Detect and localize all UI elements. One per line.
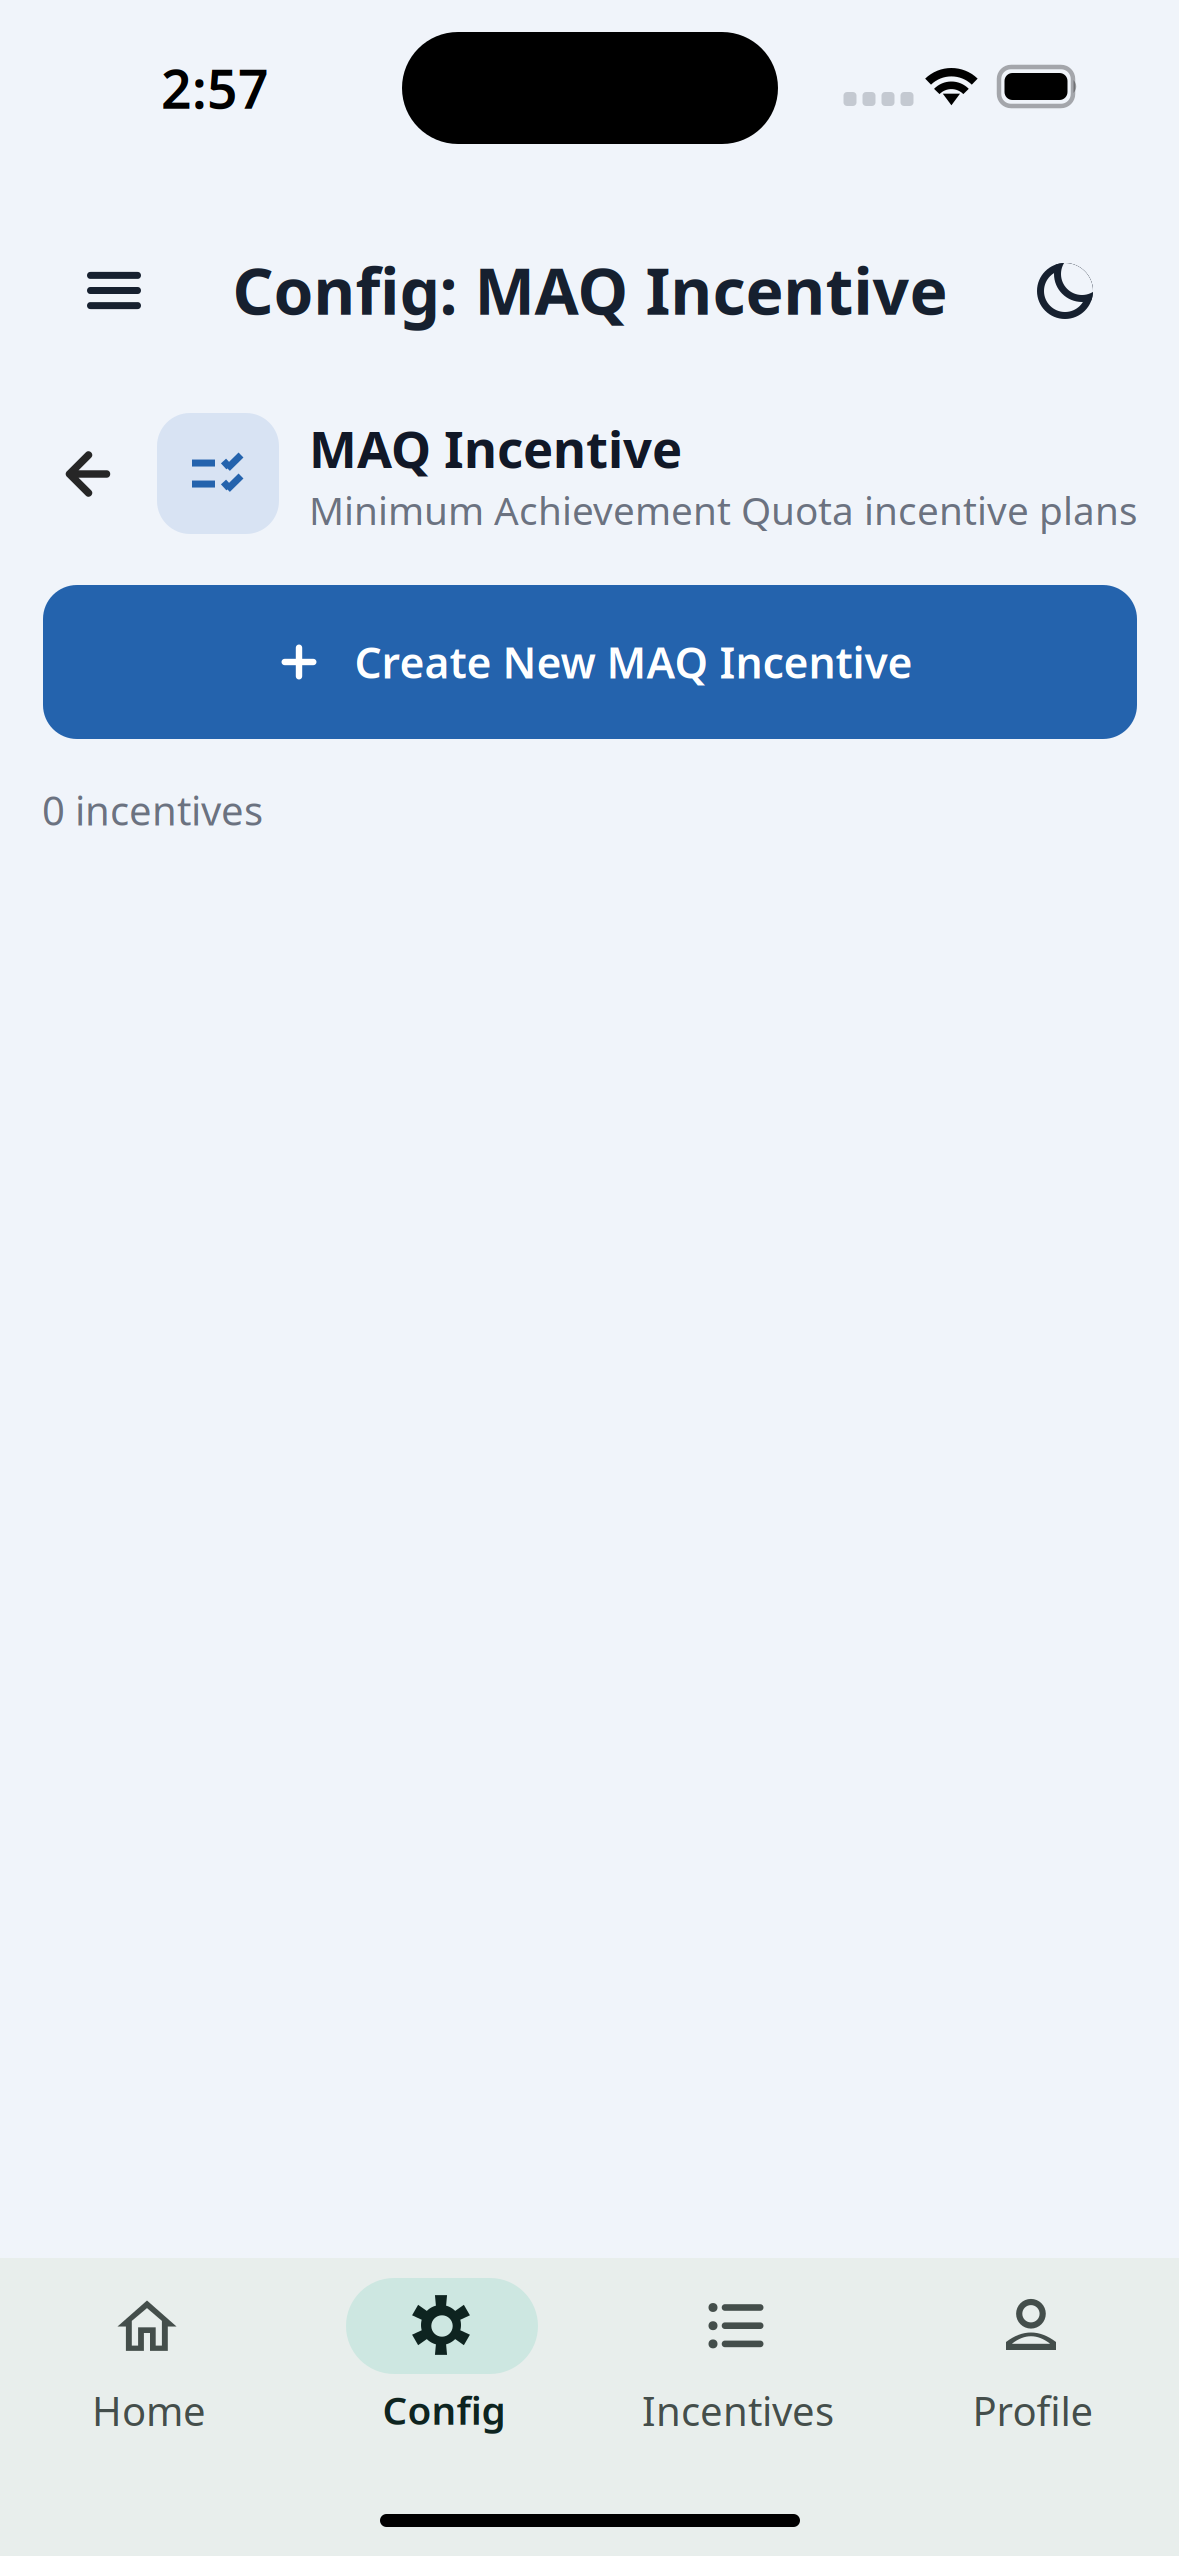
button[interactable]: Incentives bbox=[616, 2272, 856, 2432]
staticText: Config: MAQ Incentive bbox=[232, 247, 947, 332]
button[interactable]: Home bbox=[27, 2272, 267, 2432]
staticText: Incentives bbox=[642, 2384, 834, 2437]
button[interactable]: Config bbox=[322, 2272, 562, 2432]
button[interactable]: Create New MAQ Incentive bbox=[43, 585, 1137, 739]
staticText: Create New MAQ Incentive bbox=[354, 634, 912, 690]
button[interactable]: Back bbox=[42, 429, 134, 519]
button[interactable]: Profile bbox=[911, 2272, 1151, 2432]
button[interactable]: Toggle dark mode bbox=[1037, 263, 1093, 319]
staticText: Home bbox=[92, 2384, 206, 2437]
staticText: Profile bbox=[972, 2384, 1093, 2437]
button[interactable]: Menu bbox=[59, 235, 169, 345]
staticText: MAQ Incentive bbox=[309, 415, 682, 482]
staticText: 0 incentives bbox=[42, 783, 263, 836]
staticText: 2:57 bbox=[161, 53, 269, 123]
staticText: Config bbox=[382, 2384, 505, 2435]
staticText: Minimum Achievement Quota incentive plan… bbox=[309, 484, 1138, 536]
